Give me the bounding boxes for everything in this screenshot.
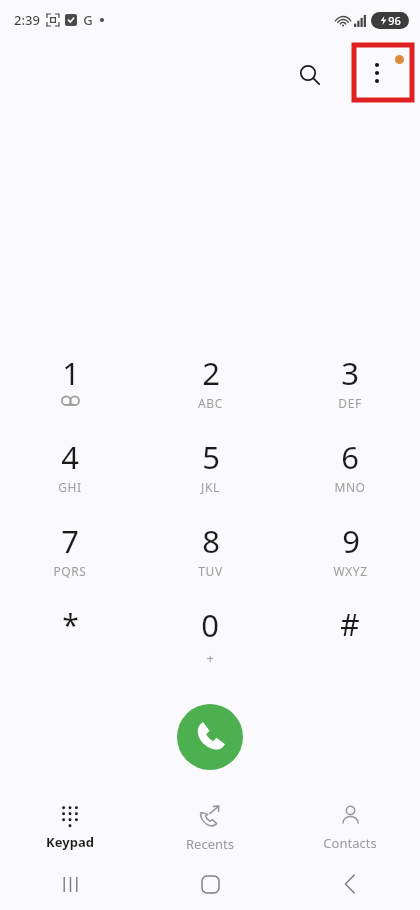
staticText: 9 [342,520,360,562]
button[interactable]: 8 [140,514,280,598]
button[interactable]: 3 [280,346,420,430]
staticText: 8 [202,520,220,562]
staticText: TUV [198,563,223,579]
button[interactable]: Back [280,858,420,910]
staticText: G [83,11,93,29]
button[interactable]: 1 [0,346,140,430]
button[interactable]: Recents [140,796,280,858]
button[interactable]: Contacts [280,796,420,858]
staticText: 3 [341,352,359,394]
button[interactable]: * [0,598,140,682]
staticText: Recents [186,835,234,853]
button[interactable]: Recent apps [0,858,140,910]
staticText: # [340,604,360,645]
button[interactable]: Search [288,53,332,97]
button[interactable]: 5 [140,430,280,514]
staticText: JKL [201,479,220,495]
staticText: + [206,649,215,667]
staticText: ABC [198,395,223,411]
staticText: WXYZ [333,563,368,579]
button[interactable]: 4 [0,430,140,514]
staticText: * [62,604,79,645]
button[interactable]: 6 [280,430,420,514]
button[interactable]: 2 [140,346,280,430]
button[interactable]: More options [354,45,412,100]
staticText: 5 [202,436,220,478]
staticText: 1 [62,352,80,394]
button[interactable]: Call [177,704,243,770]
button[interactable]: Home [140,858,280,910]
button[interactable]: Keypad [0,796,140,858]
button[interactable]: 7 [0,514,140,598]
staticText: GHI [58,479,82,495]
staticText: Contacts [323,834,377,852]
staticText: 96 [388,13,401,28]
button[interactable]: 9 [280,514,420,598]
staticText: 7 [61,520,79,562]
staticText: 6 [341,436,359,478]
button[interactable]: 0 [140,598,280,682]
staticText: 2:39 [14,11,40,29]
button[interactable]: # [280,598,420,682]
staticText: DEF [338,395,362,411]
staticText: 2 [202,352,220,394]
staticText: 0 [201,604,219,646]
staticText: 4 [61,436,79,478]
staticText: PQRS [53,563,87,579]
staticText: Keypad [46,833,94,851]
staticText: MNO [334,479,366,495]
